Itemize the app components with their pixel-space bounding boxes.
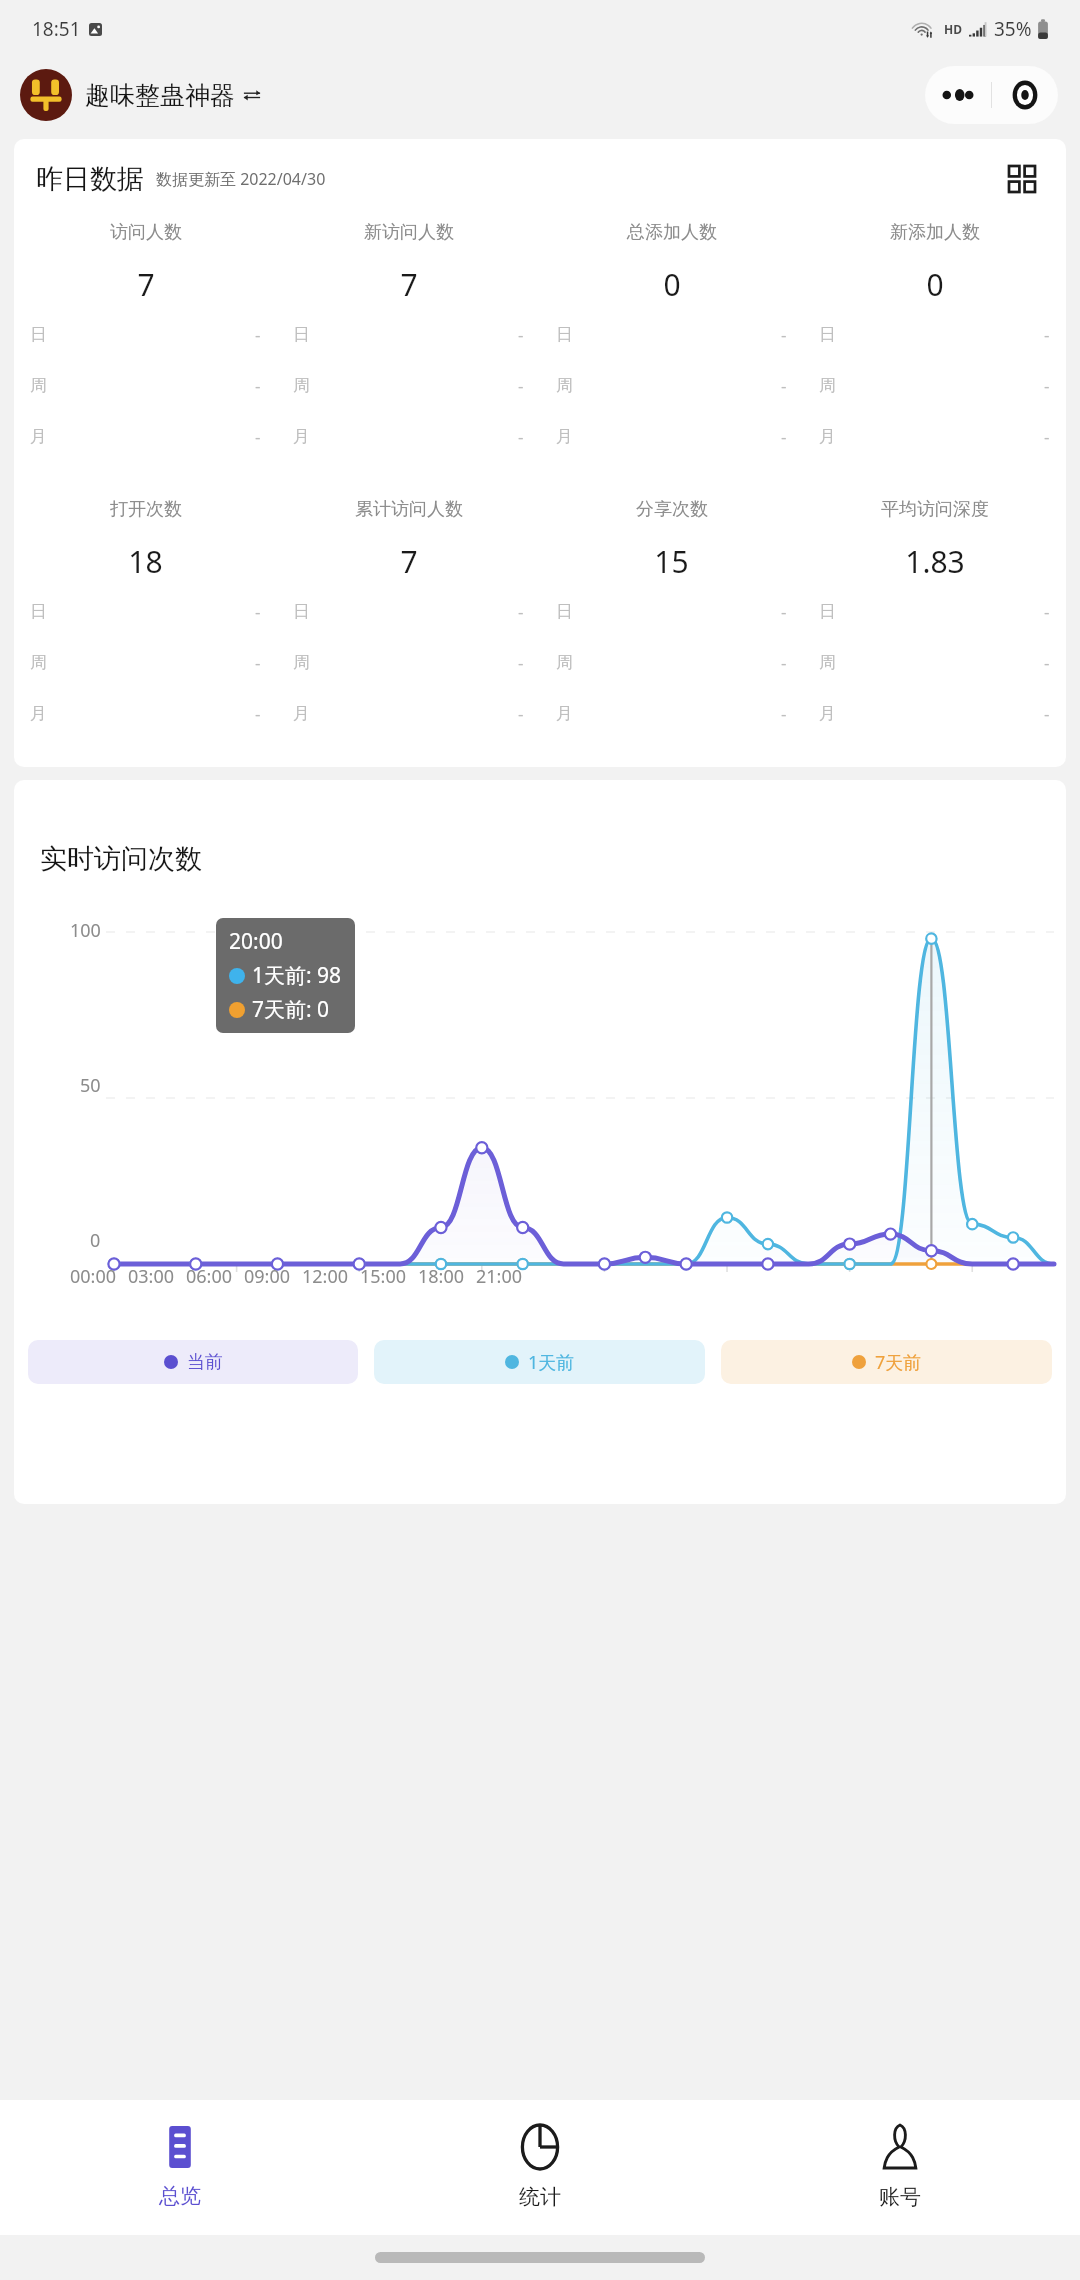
staticText: 06:00 — [186, 1264, 233, 1289]
staticText: 月 — [293, 703, 310, 724]
staticText: 日 — [556, 601, 573, 622]
staticText: 15:00 — [360, 1264, 407, 1289]
staticText: 日 — [819, 324, 836, 345]
staticText: 昨日数据 — [36, 162, 144, 196]
staticText: 1天前 — [528, 1350, 575, 1375]
staticText: 0 — [663, 264, 681, 305]
staticText: - — [255, 323, 261, 346]
staticText: 周 — [30, 375, 47, 396]
button[interactable]: 新访问人数 — [277, 221, 540, 476]
button[interactable]: 分享次数 — [540, 498, 803, 753]
staticText: 趣味整蛊神器 — [85, 80, 235, 111]
staticText: 日 — [293, 324, 310, 345]
staticText: 周 — [556, 652, 573, 673]
staticText: 18:00 — [418, 1264, 465, 1289]
staticText: 数据更新至 2022/04/30 — [156, 168, 326, 190]
staticText: 21:00 — [476, 1264, 523, 1289]
staticText: 1.83 — [905, 541, 965, 582]
button[interactable]: Grid view — [1002, 159, 1042, 199]
staticText: 周 — [30, 652, 47, 673]
button[interactable]: 统计 — [360, 2100, 720, 2235]
staticText: 1天前: 98 — [252, 961, 342, 990]
staticText: 03:00 — [128, 1264, 175, 1289]
staticText: - — [255, 600, 261, 623]
staticText: 7天前 — [875, 1350, 922, 1375]
staticText: 09:00 — [244, 1264, 291, 1289]
staticText: HD — [944, 21, 962, 37]
staticText: 100 — [70, 918, 101, 943]
button[interactable]: 当前 — [28, 1340, 358, 1384]
staticText: - — [518, 425, 524, 448]
staticText: - — [255, 374, 261, 397]
staticText: 50 — [80, 1073, 101, 1098]
staticText: 18 — [128, 541, 163, 582]
staticText: - — [1044, 600, 1050, 623]
button[interactable]: 平均访问深度 — [803, 498, 1066, 753]
staticText: - — [518, 702, 524, 725]
staticText: 总览 — [159, 2183, 201, 2209]
button[interactable]: 新添加人数 — [803, 221, 1066, 476]
staticText: - — [781, 702, 787, 725]
button[interactable]: 总览 — [0, 2100, 360, 2235]
staticText: 35% — [994, 16, 1032, 42]
staticText: - — [1044, 323, 1050, 346]
staticText: 日 — [556, 324, 573, 345]
staticText: - — [518, 651, 524, 674]
staticText: 新访问人数 — [364, 221, 454, 244]
staticText: 日 — [30, 324, 47, 345]
button[interactable]: 7天前 — [721, 1340, 1052, 1384]
staticText: 打开次数 — [110, 498, 182, 521]
staticText: - — [781, 323, 787, 346]
staticText: 周 — [819, 375, 836, 396]
staticText: 账号 — [879, 2184, 921, 2210]
staticText: 总添加人数 — [627, 221, 717, 244]
button[interactable]: 账号 — [720, 2100, 1080, 2235]
staticText: 月 — [293, 426, 310, 447]
staticText: 7天前: 0 — [252, 995, 330, 1024]
button[interactable]: 总添加人数 — [540, 221, 803, 476]
staticText: 7 — [400, 541, 418, 582]
staticText: 月 — [556, 703, 573, 724]
staticText: - — [518, 374, 524, 397]
staticText: 周 — [556, 375, 573, 396]
staticText: 日 — [30, 601, 47, 622]
staticText: - — [255, 425, 261, 448]
button[interactable]: 访问人数 — [14, 221, 277, 476]
staticText: 月 — [30, 426, 47, 447]
staticText: - — [255, 702, 261, 725]
staticText: 0 — [90, 1228, 101, 1253]
button[interactable]: 打开次数 — [14, 498, 277, 753]
staticText: 周 — [293, 375, 310, 396]
button[interactable]: More — [925, 66, 991, 124]
staticText: 平均访问深度 — [881, 498, 989, 521]
button[interactable]: 1天前 — [374, 1340, 705, 1384]
staticText: 统计 — [519, 2184, 561, 2210]
staticText: 新添加人数 — [890, 221, 980, 244]
staticText: 日 — [819, 601, 836, 622]
staticText: 7 — [400, 264, 418, 305]
staticText: 7 — [137, 264, 155, 305]
staticText: - — [1044, 702, 1050, 725]
staticText: 18:51 — [32, 16, 81, 42]
staticText: - — [781, 374, 787, 397]
staticText: 累计访问人数 — [355, 498, 463, 521]
staticText: - — [255, 651, 261, 674]
staticText: 实时访问次数 — [40, 842, 202, 876]
staticText: - — [781, 651, 787, 674]
staticText: - — [781, 600, 787, 623]
button[interactable]: 趣味整蛊神器 — [20, 69, 261, 121]
staticText: - — [518, 600, 524, 623]
staticText: 周 — [819, 652, 836, 673]
staticText: 访问人数 — [110, 221, 182, 244]
staticText: - — [1044, 651, 1050, 674]
staticText: - — [518, 323, 524, 346]
staticText: 当前 — [187, 1351, 223, 1374]
staticText: - — [1044, 374, 1050, 397]
button[interactable]: 累计访问人数 — [277, 498, 540, 753]
staticText: - — [1044, 425, 1050, 448]
staticText: 20:00 — [229, 927, 283, 956]
button[interactable]: Target — [992, 66, 1058, 124]
staticText: 月 — [819, 703, 836, 724]
staticText: 分享次数 — [636, 498, 708, 521]
staticText: 0 — [926, 264, 944, 305]
